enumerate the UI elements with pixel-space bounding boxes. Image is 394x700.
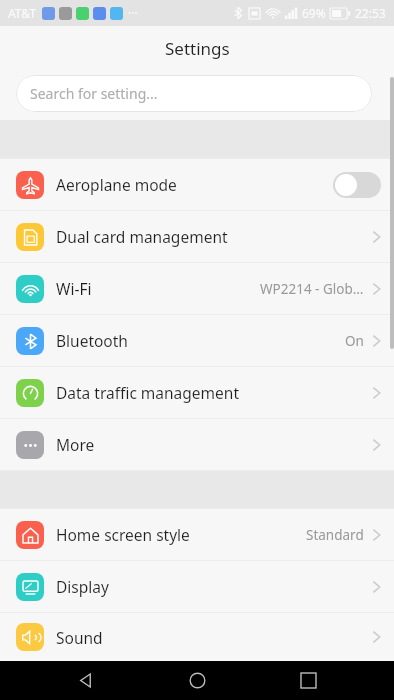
staticText: Wi-Fi xyxy=(56,278,92,299)
button[interactable]: Search for setting... xyxy=(16,75,372,112)
button[interactable]: Display xyxy=(0,561,394,612)
button[interactable]: Recents xyxy=(283,661,333,700)
staticText: Standard xyxy=(306,526,364,544)
staticText: 22:53 xyxy=(355,5,386,21)
staticText: Data traffic management xyxy=(56,382,239,403)
staticText: AT&T xyxy=(8,5,36,21)
staticText: On xyxy=(345,332,364,350)
button[interactable]: Dual card management xyxy=(0,211,394,262)
button[interactable]: Home screen style xyxy=(0,509,394,560)
button[interactable]: More xyxy=(0,419,394,470)
staticText: Bluetooth xyxy=(56,330,128,351)
staticText: More xyxy=(56,434,95,455)
staticText: Dual card management xyxy=(56,226,228,247)
button[interactable]: Aeroplane mode toggle xyxy=(333,172,381,198)
button[interactable]: Back xyxy=(61,661,111,700)
staticText: Home screen style xyxy=(56,524,190,545)
button[interactable]: Bluetooth xyxy=(0,315,394,366)
button[interactable]: Aeroplane mode xyxy=(0,159,394,210)
staticText: Sound xyxy=(56,627,103,648)
staticText: 69% xyxy=(302,5,326,21)
staticText: Search for setting... xyxy=(30,84,158,103)
button[interactable]: Sound xyxy=(0,613,394,661)
staticText: Settings xyxy=(165,37,230,60)
button[interactable]: Home xyxy=(172,661,222,700)
staticText: Display xyxy=(56,576,109,597)
staticText: Aeroplane mode xyxy=(56,174,177,195)
button[interactable]: Wi-Fi xyxy=(0,263,394,314)
button[interactable]: Data traffic management xyxy=(0,367,394,418)
staticText: WP2214 - Glob… xyxy=(260,280,364,298)
